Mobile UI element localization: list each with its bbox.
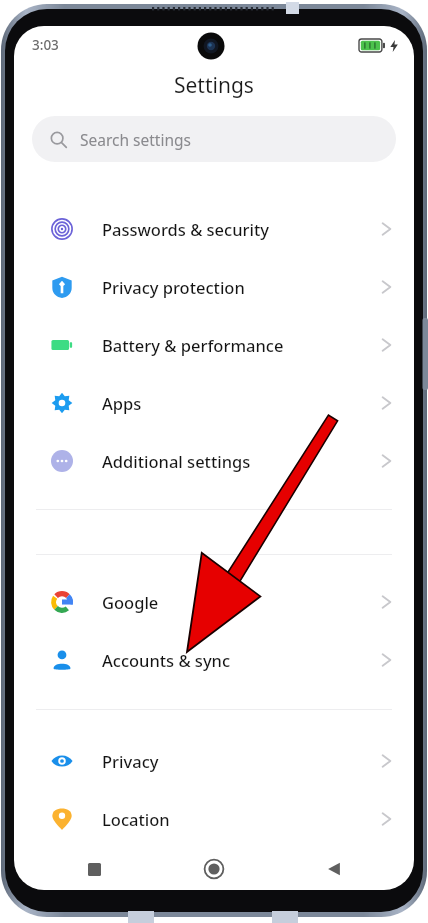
button[interactable]: Search settings bbox=[32, 116, 396, 162]
button[interactable]: Additional settings bbox=[14, 432, 414, 490]
button[interactable]: Recent apps bbox=[68, 848, 120, 890]
staticText: Privacy protection bbox=[102, 276, 381, 298]
button[interactable]: Apps bbox=[14, 374, 414, 432]
staticText: 3:03 bbox=[32, 36, 59, 54]
button[interactable]: Accounts & sync bbox=[14, 631, 414, 689]
button[interactable]: Back bbox=[308, 848, 360, 890]
staticText: Search settings bbox=[80, 129, 191, 150]
staticText: Location bbox=[102, 808, 381, 830]
staticText: Battery & performance bbox=[102, 334, 381, 356]
button[interactable]: Privacy bbox=[14, 732, 414, 790]
staticText: Passwords & security bbox=[102, 218, 381, 240]
button[interactable]: Google bbox=[14, 573, 414, 631]
staticText: Google bbox=[102, 591, 381, 613]
button[interactable]: Home bbox=[188, 848, 240, 890]
button[interactable]: Privacy protection bbox=[14, 258, 414, 316]
staticText: Privacy bbox=[102, 750, 381, 772]
staticText: Additional settings bbox=[102, 450, 381, 472]
button[interactable]: Location bbox=[14, 790, 414, 848]
staticText: Apps bbox=[102, 392, 381, 414]
button[interactable]: Battery & performance bbox=[14, 316, 414, 374]
staticText: Settings bbox=[174, 71, 254, 100]
staticText: Accounts & sync bbox=[102, 649, 381, 671]
button[interactable]: Passwords & security bbox=[14, 200, 414, 258]
